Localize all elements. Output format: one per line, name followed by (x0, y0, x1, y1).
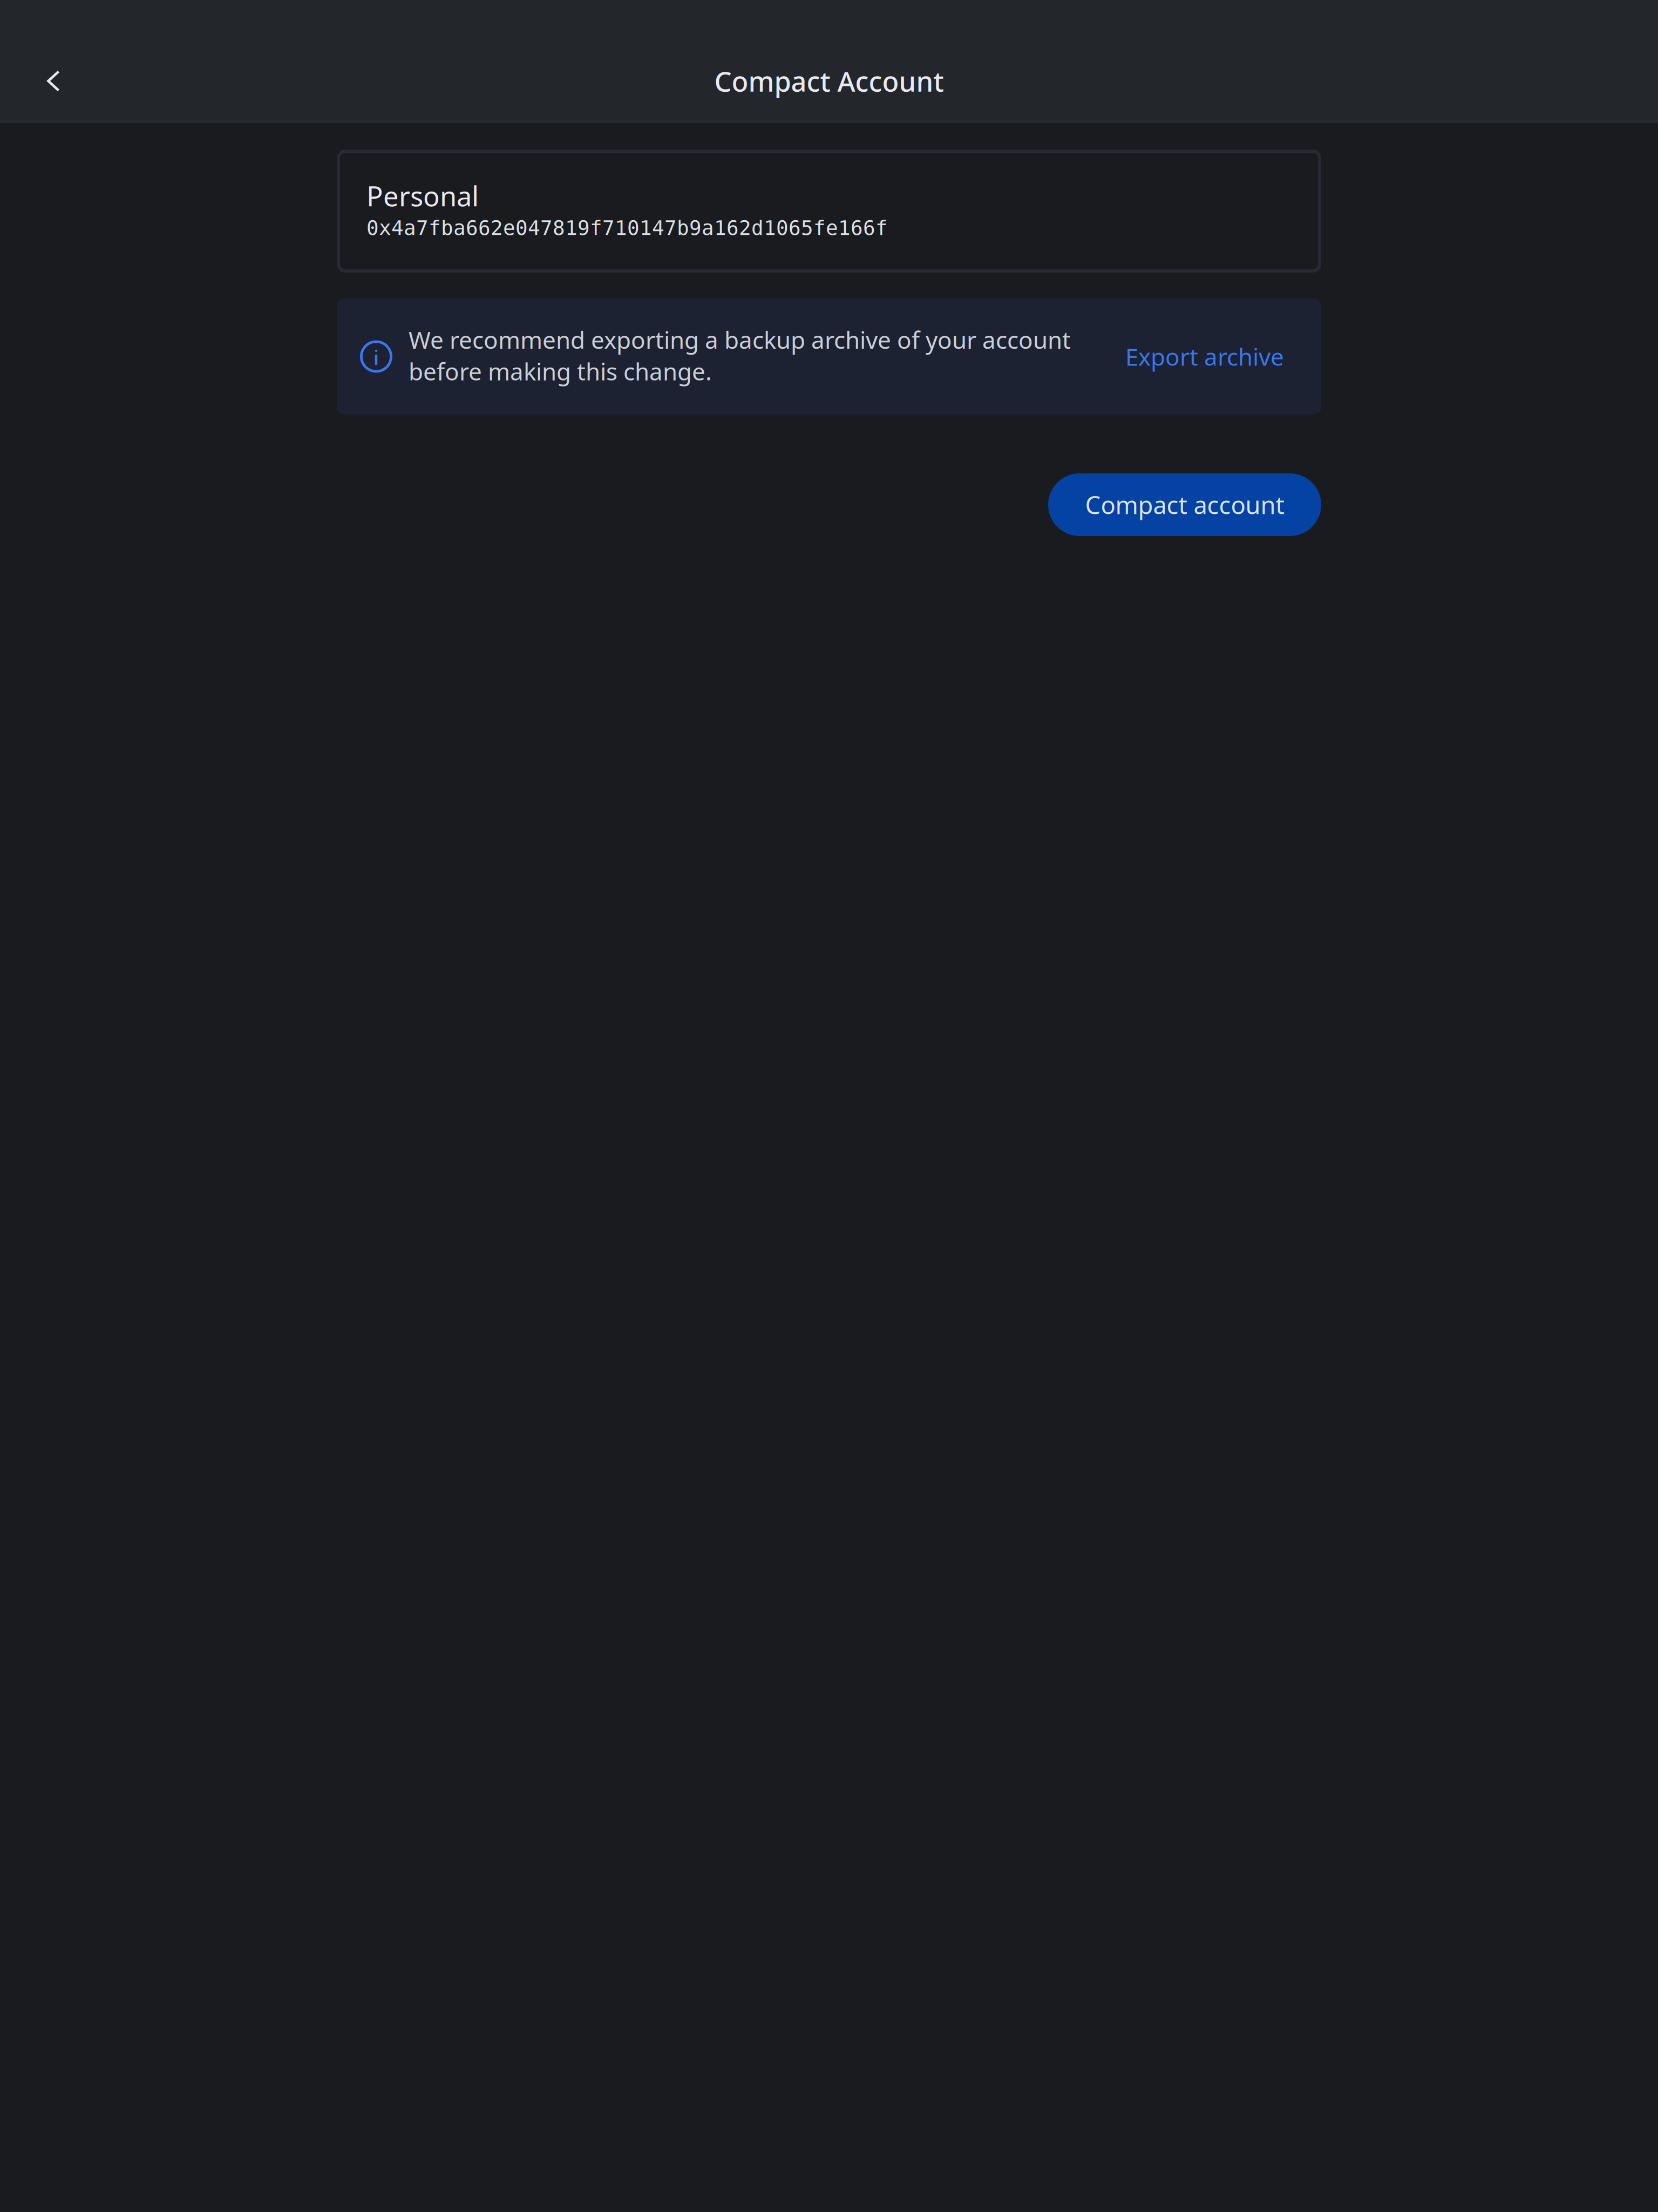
staticText: Personal (366, 178, 479, 214)
staticText: Compact Account (714, 63, 944, 99)
staticText: Compact account (1085, 488, 1284, 521)
button[interactable]: Back (0, 54, 107, 108)
button[interactable]: Compact account (1048, 473, 1321, 536)
button[interactable]: Export archive (1125, 341, 1284, 372)
staticText: 0x4a7fba662e047819f710147b9a162d1065fe16… (366, 216, 888, 240)
staticText: We recommend exporting a backup archive … (409, 324, 1071, 387)
staticText: Export archive (1125, 341, 1284, 372)
